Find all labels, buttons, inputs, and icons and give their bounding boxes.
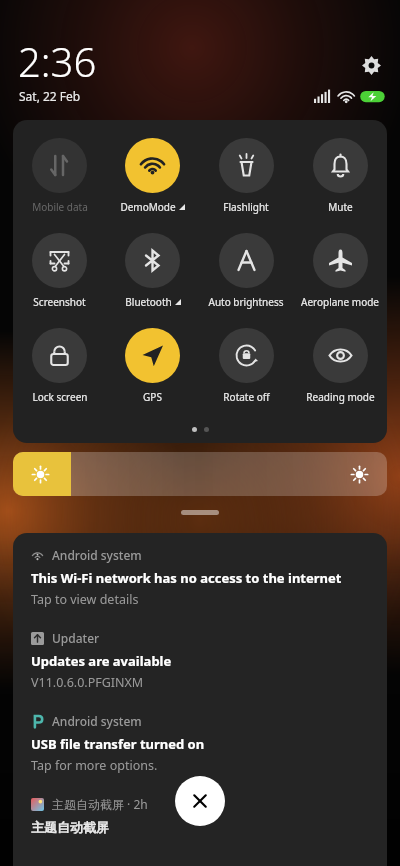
button[interactable] [13,452,387,496]
staticText: Sat, 22 Feb [19,88,81,104]
button[interactable]: Updater [31,630,373,691]
staticText: Mobile data [32,200,88,214]
button[interactable]: Mute [293,136,387,214]
staticText: Bluetooth [125,295,172,309]
staticText: Rotate off [223,390,270,404]
staticText: Screenshot [33,295,86,309]
staticText: 主题自动截屏 · 2h [52,796,148,812]
button[interactable]: Lock screen [13,326,106,404]
button[interactable]: Clear all notifications [175,776,225,826]
button[interactable]: Screenshot [13,231,106,309]
button[interactable]: Auto brightness [199,231,293,309]
button[interactable]: Android system [31,547,373,608]
staticText: Auto brightness [208,295,284,309]
staticText: Mute [328,200,353,214]
staticText: DemoMode [120,200,176,214]
button[interactable]: DemoMode [106,136,199,214]
staticText: Lock screen [32,390,88,404]
staticText: GPS [143,390,162,404]
staticText: Flashlight [223,200,269,214]
button[interactable]: Settings [356,50,386,80]
staticText: Reading mode [306,390,375,404]
staticText: Android system [52,547,142,563]
button[interactable]: Android system [31,713,373,774]
staticText: V11.0.6.0.PFGINXM [31,674,144,691]
button[interactable]: Mobile data [13,136,106,214]
button[interactable]: Flashlight [199,136,293,214]
button[interactable]: Rotate off [199,326,293,404]
staticText: USB file transfer turned on [31,735,205,753]
staticText: Tap to view details [31,591,139,608]
button[interactable]: Reading mode [293,326,387,404]
staticText: 2:36 [18,34,97,88]
staticText: This Wi-Fi network has no access to the … [31,569,342,587]
staticText: Tap for more options. [31,757,158,774]
staticText: Updater [52,630,100,646]
button[interactable]: Aeroplane mode [293,231,387,309]
staticText: Updates are available [31,652,172,670]
staticText: Aeroplane mode [301,295,379,309]
button[interactable]: GPS [106,326,199,404]
staticText: 主题自动截屏 [31,819,109,835]
staticText: Android system [52,713,142,729]
button[interactable]: Bluetooth [106,231,199,309]
